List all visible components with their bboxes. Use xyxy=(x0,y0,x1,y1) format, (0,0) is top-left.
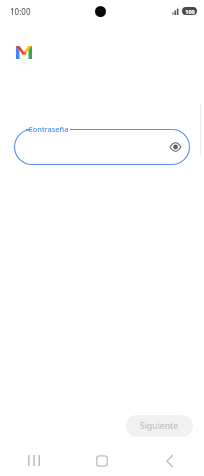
button[interactable]: Siguiente xyxy=(126,415,193,437)
staticText: Siguiente xyxy=(140,420,179,432)
button[interactable]: Inicio xyxy=(68,445,136,476)
button[interactable]: Recientes xyxy=(0,445,68,476)
button[interactable]: Mostrar contraseña xyxy=(166,138,184,156)
staticText: Contraseña xyxy=(28,124,69,134)
staticText: 100 xyxy=(185,8,195,15)
button[interactable]: Atrás xyxy=(136,445,204,476)
staticText: 10:00 xyxy=(10,6,31,17)
button[interactable]: Contraseña xyxy=(14,129,190,165)
